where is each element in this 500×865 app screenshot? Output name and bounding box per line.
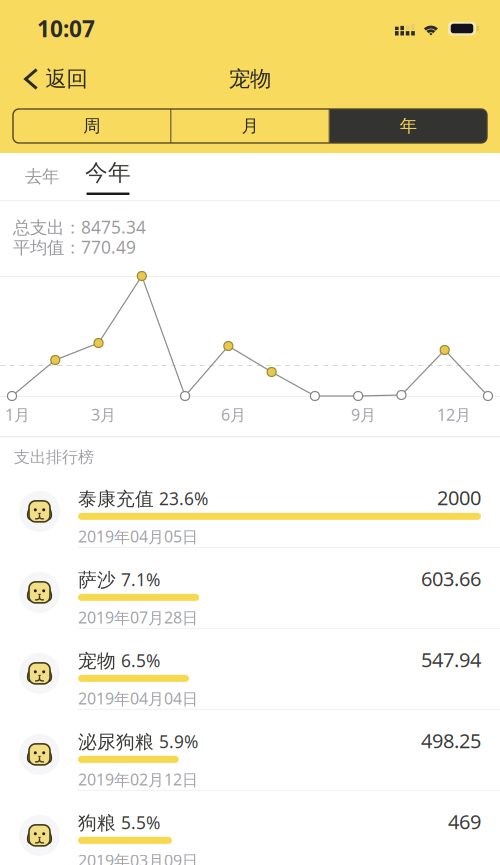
staticText: 547.94 [421,646,481,673]
staticText: 支出排行榜 [14,447,94,467]
staticText: 1月 [5,404,30,425]
staticText: 603.66 [421,565,481,592]
button[interactable]: 萨沙 [0,548,500,628]
staticText: 498.25 [421,727,481,754]
staticText: 去年 [25,166,59,187]
staticText: 萨沙 [78,568,116,591]
button[interactable]: 去年 [9,153,75,200]
staticText: 2000 [437,484,481,511]
button[interactable]: 宠物 [0,629,500,709]
staticText: 5.5% [116,811,160,834]
staticText: 10:07 [37,13,95,43]
staticText: 年 [400,115,417,137]
staticText: 泰康充值 [78,487,154,510]
staticText: 周 [83,115,100,137]
staticText: 6.5% [116,649,160,672]
button[interactable]: 月 [171,109,329,143]
staticText: 返回 [45,66,87,92]
staticText: 23.6% [154,487,208,510]
button[interactable]: 泰康充值 [0,467,500,547]
staticText: 5.9% [154,730,198,753]
staticText: 6月 [221,404,246,425]
staticText: 今年 [85,159,131,187]
staticText: 宠物 [229,66,271,92]
staticText: 平均值：770.49 [13,235,136,258]
staticText: 泌尿狗粮 [78,730,154,753]
button[interactable]: 今年 [75,153,141,200]
staticText: 469 [448,808,481,835]
staticText: 狗粮 [78,811,116,834]
button[interactable]: 狗粮 [0,791,500,865]
button[interactable]: 返回 [0,60,87,98]
staticText: 2019年02月12日 [78,769,198,790]
staticText: 月 [241,115,258,137]
button[interactable]: 周 [13,109,170,143]
button[interactable]: 年 [330,109,487,143]
staticText: 2019年07月28日 [78,607,198,628]
staticText: 2019年04月04日 [78,688,198,709]
staticText: 宠物 [78,649,116,672]
staticText: 总支出：8475.34 [13,215,146,238]
staticText: 3月 [91,404,116,425]
staticText: 12月 [437,404,471,425]
staticText: 2019年04月05日 [78,526,198,547]
button[interactable]: 泌尿狗粮 [0,710,500,790]
staticText: 2019年03月09日 [78,850,198,865]
staticText: 7.1% [116,568,160,591]
staticText: 9月 [351,404,376,425]
